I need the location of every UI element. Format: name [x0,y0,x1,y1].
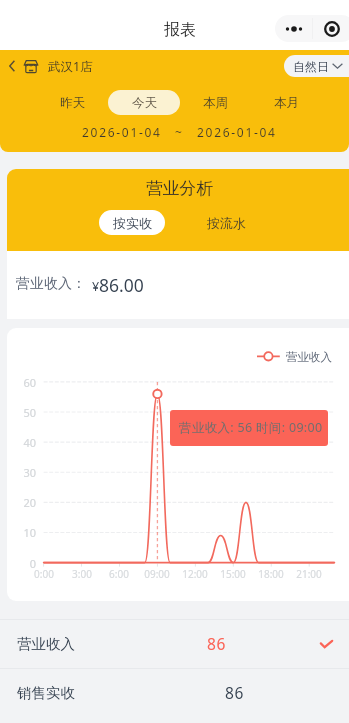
staticText: 40 [7,435,36,450]
staticText: 武汉1店 [48,58,93,75]
staticText: 10 [7,525,36,540]
staticText: 18:00 [251,567,291,581]
staticText: 60 [7,375,36,390]
staticText: 营业收入： [16,275,86,293]
staticText: 本月 [274,95,299,111]
button[interactable]: More options [275,15,312,42]
staticText: 50 [7,405,36,420]
button[interactable]: 本周 [189,90,241,115]
staticText: 营业收入: 56 时间: 09:00 [179,419,323,436]
button[interactable]: 销售实收 [0,668,349,717]
staticText: 86 [207,633,226,654]
staticText: 报表 [164,20,196,40]
staticText: 2026-01-04 [197,124,277,140]
button[interactable]: 武汉1店 [9,54,93,78]
button[interactable]: Close mini program [313,15,349,42]
staticText: 本周 [203,95,228,111]
staticText: 21:00 [289,567,329,581]
staticText: 86 [225,682,244,703]
button[interactable]: 按流水 [193,210,259,235]
staticText: 20 [7,495,36,510]
staticText: 86.00 [99,273,144,297]
button[interactable]: 本月 [260,90,312,115]
staticText: ~ [175,124,184,140]
staticText: 15:00 [213,567,253,581]
staticText: 3:00 [62,567,102,581]
staticText: ¥ [92,278,100,295]
staticText: 营业收入 [17,635,75,653]
button[interactable]: 营业收入 [0,619,349,668]
staticText: 按流水 [207,215,246,231]
staticText: 昨天 [60,95,85,111]
staticText: 自然日 [293,59,329,74]
staticText: 12:00 [175,567,215,581]
staticText: 0 [7,556,36,571]
staticText: 2026-01-04 [82,124,162,140]
button[interactable]: 按实收 [99,210,165,235]
button[interactable]: 昨天 [46,90,98,115]
button[interactable]: 今天 [108,90,180,115]
staticText: 今天 [132,95,157,111]
button[interactable]: 自然日 [284,55,349,77]
staticText: 营业收入 [286,350,332,364]
staticText: 营业分析 [146,178,214,199]
staticText: 09:00 [137,567,177,581]
staticText: 30 [7,465,36,480]
staticText: 销售实收 [17,684,75,702]
staticText: 按实收 [113,215,152,231]
staticText: 6:00 [99,567,139,581]
staticText: 0:00 [24,567,64,581]
